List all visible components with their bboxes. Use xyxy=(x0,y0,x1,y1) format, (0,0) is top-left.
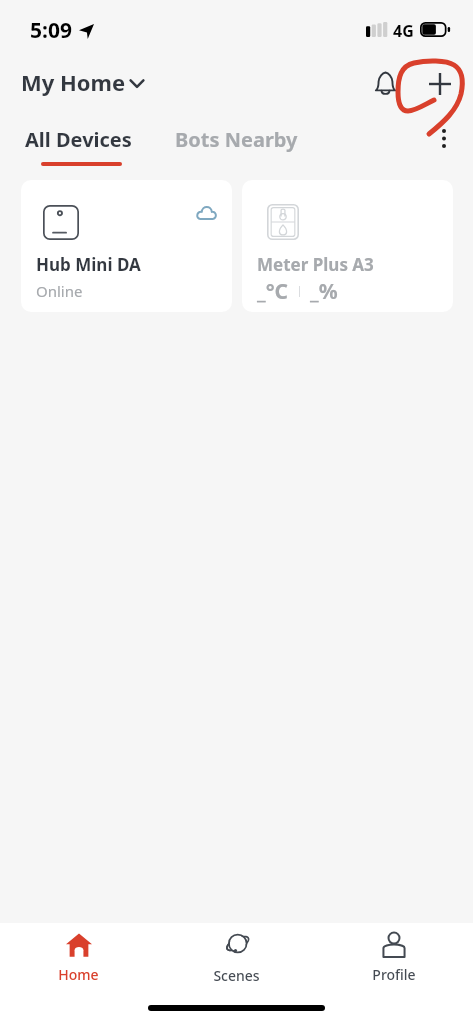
button[interactable]: More options xyxy=(432,126,456,150)
button[interactable]: Bots Nearby xyxy=(175,126,298,153)
staticText: Profile xyxy=(372,965,416,984)
staticText: Meter Plus A3 xyxy=(257,253,374,276)
button[interactable]: Hub Mini DA xyxy=(21,180,232,312)
staticText: My Home xyxy=(21,67,126,97)
staticText: Scenes xyxy=(213,966,260,985)
staticText: Home xyxy=(58,965,99,984)
button[interactable]: Meter Plus A3 xyxy=(242,180,453,312)
staticText: 4G xyxy=(393,20,414,42)
button[interactable]: Add device xyxy=(424,68,455,99)
button[interactable]: All Devices xyxy=(25,126,132,166)
staticText: Bots Nearby xyxy=(175,126,298,153)
button[interactable]: Profile xyxy=(315,923,473,984)
staticText: 5:09 xyxy=(30,16,72,45)
button[interactable]: Notifications xyxy=(369,67,401,99)
staticText: Online xyxy=(36,281,83,301)
staticText: All Devices xyxy=(25,126,132,153)
button[interactable]: My Home xyxy=(21,67,145,97)
staticText: _% xyxy=(310,277,338,306)
staticText: Hub Mini DA xyxy=(36,253,141,276)
button[interactable]: Scenes xyxy=(157,923,315,985)
staticText: _°C xyxy=(257,277,289,306)
button[interactable]: Home xyxy=(0,923,157,984)
